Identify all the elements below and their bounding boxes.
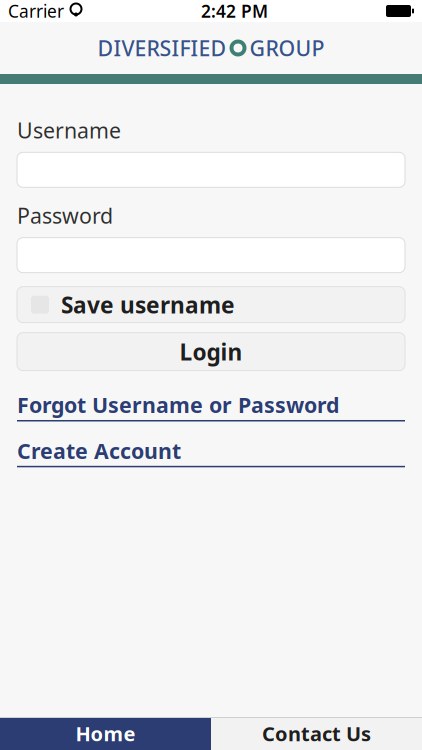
- staticText: Contact Us: [262, 720, 371, 747]
- button[interactable]: Forgot Username or Password: [17, 391, 405, 421]
- staticText: Home: [75, 720, 135, 747]
- button[interactable]: Save username: [17, 287, 405, 323]
- staticText: 2:42 PM: [201, 0, 268, 22]
- button[interactable]: Login: [17, 333, 405, 371]
- staticText: Create Account: [17, 436, 181, 465]
- staticText: Password: [17, 201, 113, 230]
- button[interactable]: Contact Us: [211, 717, 422, 750]
- staticText: DIVERSIFIED: [97, 34, 226, 62]
- staticText: Login: [179, 337, 242, 367]
- staticText: [64, 0, 69, 22]
- staticText: Save username: [61, 290, 235, 320]
- button[interactable]: Home: [0, 717, 211, 750]
- staticText: Carrier: [8, 0, 64, 22]
- button[interactable]: Create Account: [17, 436, 405, 467]
- staticText: GROUP: [249, 34, 324, 62]
- staticText: Username: [17, 116, 121, 144]
- staticText: Forgot Username or Password: [17, 391, 339, 419]
